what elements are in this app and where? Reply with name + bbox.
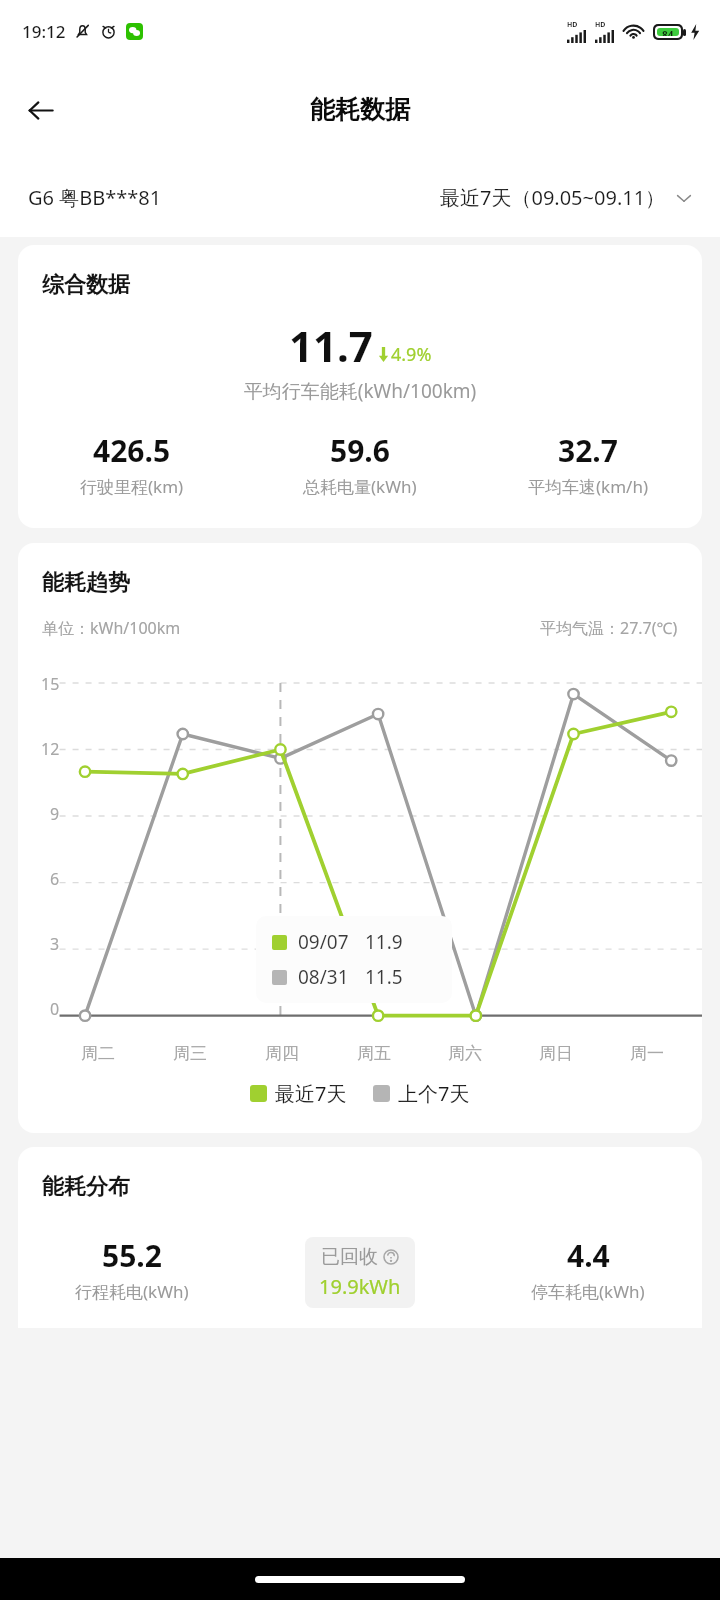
staticText: 19:12	[22, 20, 66, 43]
staticText: G6 粤BB***81	[28, 184, 162, 211]
staticText: 84	[662, 28, 674, 36]
staticText: 55.2	[102, 1235, 162, 1276]
staticText: 周二	[81, 1043, 115, 1064]
button[interactable]: 能耗分布	[18, 1147, 702, 1328]
staticText: 周六	[448, 1043, 482, 1064]
staticText: 19.9kWh	[319, 1273, 401, 1300]
button[interactable]: 最近7天（09.05~09.11）	[440, 184, 694, 211]
staticText: 上个7天	[398, 1080, 470, 1107]
staticText: 6	[50, 868, 60, 890]
staticText: 周日	[539, 1043, 573, 1064]
staticText: 09/07	[298, 929, 349, 955]
staticText: 停车耗电(kWh)	[531, 1280, 645, 1303]
staticText: 周四	[265, 1043, 299, 1064]
button[interactable]: 综合数据	[18, 245, 702, 528]
staticText: 能耗分布	[42, 1173, 130, 1201]
staticText: 12	[41, 738, 60, 760]
staticText: 平均行车能耗(kWh/100km)	[18, 378, 702, 404]
button[interactable]: 上个7天	[373, 1080, 470, 1107]
staticText: 行程耗电(kWh)	[75, 1280, 189, 1303]
staticText: 11.9	[365, 929, 403, 955]
staticText: 平均车速(km/h)	[528, 475, 649, 498]
staticText: 3	[50, 933, 60, 955]
staticText: 单位：kWh/100km	[42, 617, 181, 639]
staticText: 4.4	[567, 1235, 610, 1276]
staticText: 9	[50, 803, 60, 825]
staticText: 综合数据	[42, 271, 130, 299]
staticText: 行驶里程(km)	[80, 475, 184, 498]
staticText: 已回收	[321, 1245, 378, 1269]
staticText: 0	[50, 998, 60, 1020]
staticText: 总耗电量(kWh)	[303, 475, 417, 498]
staticText: HD	[595, 20, 606, 30]
staticText: HD	[567, 20, 578, 30]
staticText: 11.7	[289, 317, 373, 374]
staticText: 平均气温：27.7(℃)	[540, 617, 678, 639]
staticText: 15	[41, 673, 60, 695]
staticText: 4.9%	[391, 342, 432, 367]
staticText: 最近7天（09.05~09.11）	[440, 184, 666, 211]
staticText: 最近7天	[275, 1080, 347, 1107]
staticText: 周三	[173, 1043, 207, 1064]
staticText: 426.5	[93, 430, 171, 471]
button[interactable]: Back	[12, 82, 68, 138]
staticText: 能耗数据	[310, 94, 410, 125]
staticText: 32.7	[558, 430, 618, 471]
staticText: 08/31	[298, 964, 349, 990]
button[interactable]: 最近7天	[250, 1080, 347, 1107]
staticText: 周五	[357, 1043, 391, 1064]
staticText: 周一	[630, 1043, 664, 1064]
staticText: 11.5	[365, 964, 403, 990]
staticText: 能耗趋势	[42, 569, 130, 597]
staticText: 59.6	[330, 430, 390, 471]
